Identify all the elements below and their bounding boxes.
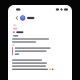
button[interactable]: Back — [14, 14, 20, 21]
button[interactable] — [20, 14, 34, 22]
